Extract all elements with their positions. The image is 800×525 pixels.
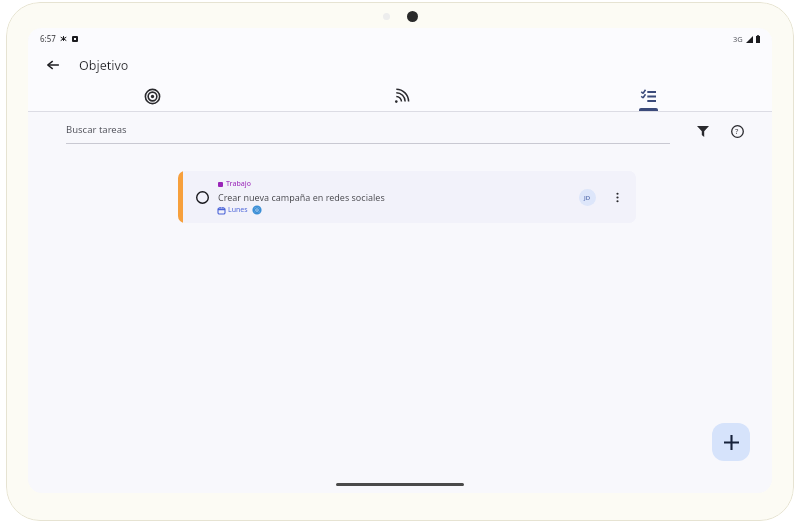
- button[interactable]: Complete task: [178, 171, 636, 223]
- staticText: Buscar tareas: [66, 123, 127, 136]
- button[interactable]: Tasks tab: [524, 81, 772, 112]
- button[interactable]: Add task: [712, 423, 750, 461]
- staticText: 6:57: [40, 33, 56, 44]
- button[interactable]: Back: [40, 52, 66, 78]
- button[interactable]: Tab: [276, 81, 524, 112]
- staticText: Lunes: [228, 205, 248, 215]
- staticText: Objetivo: [79, 57, 129, 74]
- staticText: Crear nueva campaña en redes sociales: [218, 191, 385, 203]
- button[interactable]: More options: [606, 186, 628, 208]
- button[interactable]: Complete task: [191, 186, 213, 208]
- button[interactable]: Filter: [690, 118, 716, 144]
- button[interactable]: Assignee JD: [579, 189, 596, 206]
- staticText: Trabajo: [226, 179, 251, 189]
- staticText: ?: [735, 126, 739, 136]
- button[interactable]: Help: [724, 118, 750, 144]
- staticText: JD: [584, 194, 591, 202]
- button[interactable]: Buscar tareas: [66, 112, 670, 150]
- staticText: 3G: [733, 34, 743, 44]
- button[interactable]: Tab: [28, 81, 276, 112]
